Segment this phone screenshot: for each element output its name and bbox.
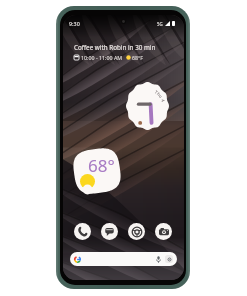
button[interactable]: Camera [155, 223, 172, 240]
staticText: 10:00 - 11:00 AM [81, 54, 123, 61]
button[interactable]: Google Lens [70, 252, 177, 266]
button[interactable]: Wallet [128, 223, 145, 240]
button[interactable]: Messages [101, 223, 118, 240]
button[interactable]: Phone [74, 223, 91, 240]
staticText: 68°F [132, 54, 144, 61]
staticText: 9:30 [69, 20, 80, 27]
staticText: 68° [88, 154, 115, 177]
staticText: 5G [157, 21, 163, 27]
button[interactable]: Clock widget [126, 82, 169, 130]
button[interactable]: Google Lens [165, 255, 173, 263]
button[interactable]: Weather widget [74, 149, 120, 193]
staticText: Coffee with Robin in 30 min [74, 43, 156, 52]
